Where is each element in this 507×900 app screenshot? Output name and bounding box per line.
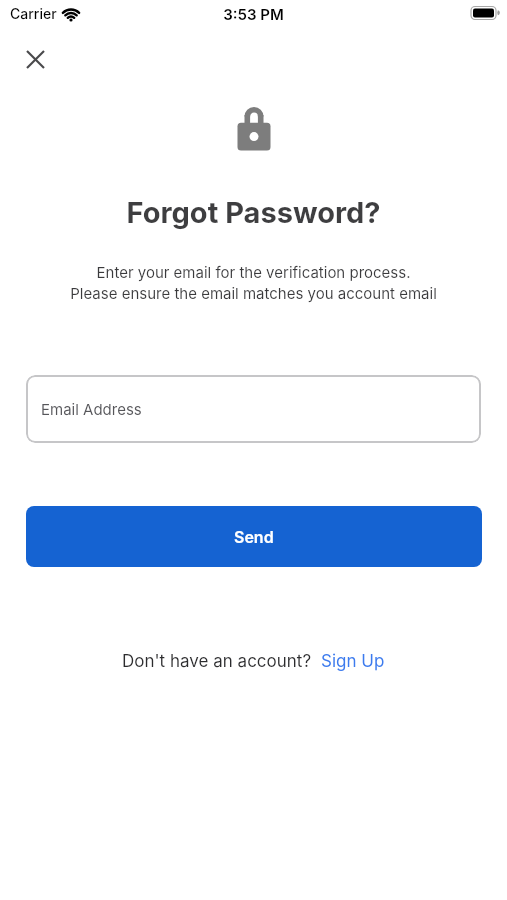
button[interactable] xyxy=(20,44,50,74)
staticText: Don't have an account? xyxy=(122,651,312,672)
staticText: 3:53 PM xyxy=(0,5,507,23)
staticText: Carrier xyxy=(10,5,57,22)
staticText: Forgot Password? xyxy=(0,195,507,230)
staticText: Sign Up xyxy=(321,651,385,672)
staticText: Send xyxy=(234,527,274,546)
staticText: Enter your email for the verification pr… xyxy=(0,263,507,302)
button[interactable]: Sign Up xyxy=(321,651,385,672)
button[interactable]: Send xyxy=(26,506,482,567)
button[interactable]: Email Address xyxy=(26,375,481,443)
staticText: Email Address xyxy=(41,400,142,418)
